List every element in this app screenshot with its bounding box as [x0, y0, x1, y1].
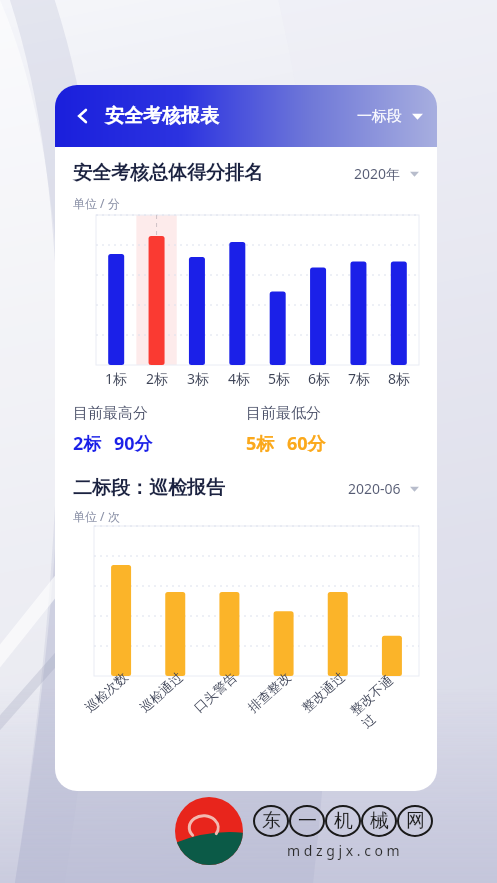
staticText: 整改通过: [298, 669, 348, 715]
staticText: 目前最低分: [246, 404, 321, 423]
staticText: 巡检次数: [81, 669, 131, 715]
staticText: 一: [298, 809, 317, 833]
staticText: 单位 / 分: [73, 195, 120, 211]
staticText: 1标: [105, 369, 128, 388]
staticText: 3标: [187, 369, 210, 388]
staticText: 网: [406, 809, 425, 833]
staticText: 5标: [268, 369, 291, 388]
staticText: 7标: [348, 369, 371, 388]
staticText: 东: [262, 809, 281, 833]
staticText: 机: [334, 809, 353, 833]
staticText: 巡检通过: [136, 669, 186, 715]
staticText: 械: [370, 809, 389, 833]
staticText: 安全考核报表: [105, 104, 219, 128]
staticText: m d z g j x . c o m: [287, 841, 400, 860]
staticText: 单位 / 次: [73, 508, 120, 524]
staticText: 6标: [308, 369, 331, 388]
staticText: 2020年: [354, 164, 401, 183]
staticText: 安全考核总体得分排名: [73, 161, 263, 185]
staticText: 排查整改: [244, 669, 294, 715]
staticText: 二标段：巡检报告: [73, 476, 225, 500]
staticText: 8标: [388, 369, 411, 388]
staticText: 5标: [246, 431, 275, 456]
staticText: 目前最高分: [73, 404, 148, 423]
staticText: 2020-06: [348, 479, 401, 498]
staticText: 2标: [146, 369, 169, 388]
button[interactable]: Back: [69, 102, 97, 130]
staticText: 一标段: [357, 107, 402, 126]
staticText: 90分: [114, 431, 153, 456]
staticText: 4标: [228, 369, 251, 388]
button[interactable]: 2020-06: [348, 479, 419, 498]
staticText: 口头警告: [190, 669, 240, 715]
button[interactable]: 一标段: [357, 107, 423, 126]
staticText: 2标: [73, 431, 102, 456]
button[interactable]: 2020年: [354, 164, 419, 183]
staticText: 60分: [287, 431, 326, 456]
staticText: 整改不通过: [347, 670, 409, 732]
